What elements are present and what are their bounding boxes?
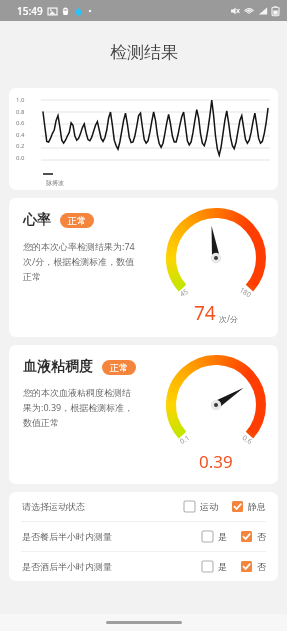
staticText: 0.8 [16, 108, 25, 116]
staticText: 0.39 [199, 450, 233, 473]
staticText: 血液粘稠度 [23, 358, 93, 376]
staticText: 0.6 [16, 119, 25, 127]
staticText: 是否餐后半小时内测量 [22, 531, 112, 542]
staticText: 0.0 [16, 154, 25, 162]
staticText: 180 [237, 285, 254, 301]
button[interactable]: 运动 [184, 499, 218, 514]
staticText: 15:49 [17, 4, 43, 18]
staticText: 静息 [248, 501, 266, 512]
staticText: 脉搏波 [46, 179, 64, 187]
staticText: 0.2 [16, 142, 25, 150]
button[interactable]: 正常 [60, 213, 94, 228]
staticText: 正常 [68, 215, 86, 226]
staticText: 心率 [23, 211, 51, 229]
staticText: 否 [257, 531, 266, 542]
button[interactable]: 是 [202, 559, 227, 574]
button[interactable]: 是 [202, 529, 227, 544]
button[interactable]: 正常 [102, 360, 136, 375]
staticText: 74 [194, 300, 216, 326]
staticText: 0.4 [16, 131, 25, 139]
staticText: 0.6 [240, 433, 254, 447]
staticText: 正常 [110, 362, 128, 373]
staticText: 1.0 [16, 96, 25, 104]
button[interactable]: 静息 [232, 499, 266, 514]
staticText: 您的本次心率检测结果为:74 次/分，根据检测标准，数值 正常 [23, 240, 135, 283]
button[interactable]: 否 [241, 529, 266, 544]
staticText: 45 [178, 286, 191, 300]
staticText: 您的本次血液粘稠度检测结 果为:0.39，根据检测标准， 数值正常 [23, 387, 134, 429]
staticText: 次/分 [219, 313, 238, 324]
staticText: 是 [218, 531, 227, 542]
staticText: 检测结果 [110, 42, 178, 63]
staticText: 否 [257, 561, 266, 572]
staticText: 是 [218, 561, 227, 572]
staticText: 请选择运动状态 [22, 501, 85, 512]
staticText: 0.1 [178, 433, 192, 447]
staticText: 运动 [200, 501, 218, 512]
button[interactable]: 否 [241, 559, 266, 574]
staticText: 是否酒后半小时内测量 [22, 561, 112, 572]
